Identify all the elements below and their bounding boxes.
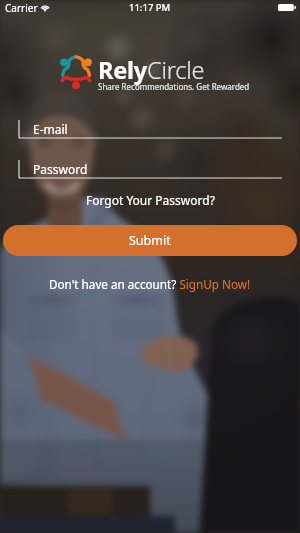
button[interactable]: Submit (3, 225, 297, 256)
other: Wi-Fi (41, 5, 49, 11)
staticText: 11:17 PM (129, 1, 171, 14)
other: Battery full (278, 4, 296, 11)
staticText: E-mail (33, 121, 68, 137)
button[interactable]: E-mail (0, 119, 300, 139)
staticText: RelyCircle (98, 54, 205, 86)
staticText: Submit (129, 232, 171, 249)
staticText: Password (33, 161, 88, 177)
staticText: Forgot Your Password? (86, 192, 215, 208)
staticText: Don't have an account? SignUp Now! (49, 276, 251, 292)
staticText: Carrier (5, 1, 38, 15)
button[interactable]: Don't have an account? SignUp Now! (0, 276, 300, 292)
button[interactable]: Password (0, 159, 300, 179)
staticText: Share Recommendations. Get Rewarded (98, 81, 250, 92)
button[interactable]: Forgot Your Password? (0, 192, 300, 208)
